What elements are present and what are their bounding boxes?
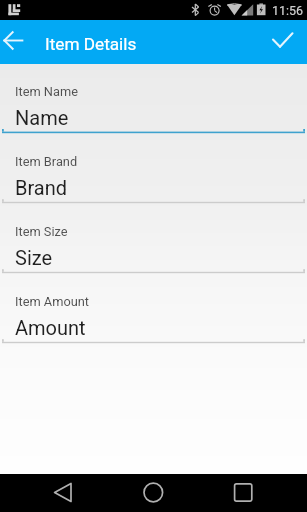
staticText: Item Details [45,34,137,54]
button[interactable]: Home [130,474,176,512]
button[interactable]: Item Size [0,204,307,274]
button[interactable]: Item Brand [0,134,307,204]
staticText: Item Amount [15,294,90,309]
staticText: Item Size [15,224,68,239]
staticText: Brand [15,176,68,199]
button[interactable]: Item Name [0,64,307,134]
button[interactable]: Recent apps [220,474,266,512]
button[interactable]: Save item [263,20,307,64]
button[interactable]: Item Amount [0,274,307,344]
staticText: 11:56 [272,3,304,18]
staticText: Size [15,246,53,269]
staticText: Item Name [15,84,78,99]
button[interactable]: Navigate up [0,20,40,64]
button[interactable]: Back [40,474,86,512]
staticText: Item Brand [15,154,78,169]
staticText: Name [15,106,69,129]
staticText: Amount [15,316,86,339]
